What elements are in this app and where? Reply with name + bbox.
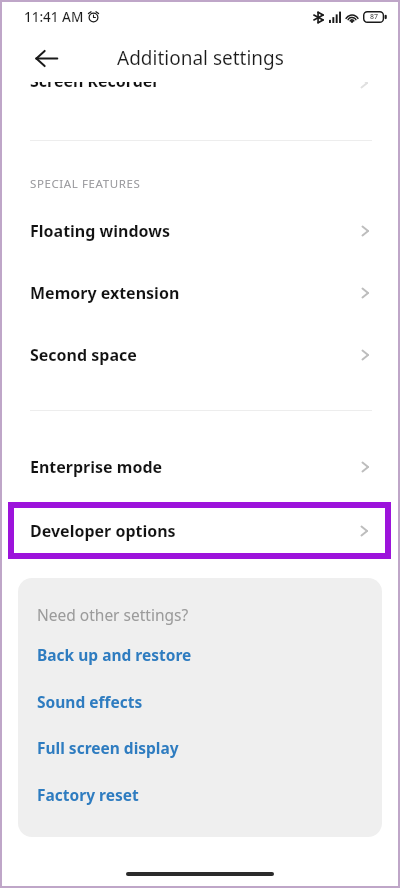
staticText: Second space xyxy=(30,344,137,366)
staticText: Memory extension xyxy=(30,282,180,304)
button[interactable]: Developer options xyxy=(8,502,391,559)
staticText: Back up and restore xyxy=(37,644,192,665)
staticText: SPECIAL FEATURES xyxy=(30,176,141,192)
staticText: 87 xyxy=(370,12,379,22)
button[interactable]: Second space xyxy=(0,331,400,379)
staticText: Additional settings xyxy=(117,45,284,71)
button[interactable]: Full screen display xyxy=(18,729,382,765)
button[interactable]: Back xyxy=(26,38,66,78)
staticText: 11:41 AM xyxy=(24,8,84,26)
staticText: Enterprise mode xyxy=(30,456,163,478)
staticText: Sound effects xyxy=(37,691,143,712)
staticText: 87 xyxy=(370,12,379,22)
staticText: Floating windows xyxy=(30,220,170,242)
button[interactable]: Enterprise mode xyxy=(0,443,400,491)
button[interactable]: Floating windows xyxy=(0,207,400,255)
button[interactable]: Memory extension xyxy=(0,269,400,317)
staticText: Developer options xyxy=(30,520,176,542)
button[interactable]: Screen Recorder xyxy=(0,62,400,102)
staticText: Screen Recorder xyxy=(30,70,160,92)
staticText: Additional settings xyxy=(117,45,284,71)
staticText: 11:41 AM xyxy=(24,8,84,26)
button[interactable]: Factory reset xyxy=(18,776,382,812)
staticText: Need other settings? xyxy=(37,604,189,625)
staticText: Full screen display xyxy=(37,737,179,758)
button[interactable]: Back up and restore xyxy=(18,636,382,672)
staticText: Factory reset xyxy=(37,784,139,805)
button[interactable]: Back xyxy=(26,38,66,78)
button[interactable]: Sound effects xyxy=(18,683,382,719)
